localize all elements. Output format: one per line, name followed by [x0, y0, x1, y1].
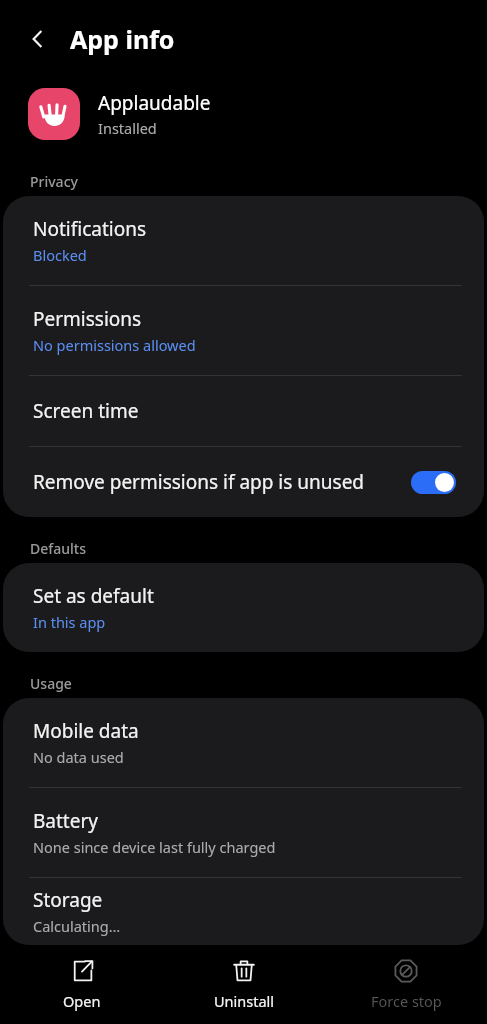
staticText: Mobile data: [33, 718, 139, 744]
button[interactable]: Storage: [3, 878, 484, 945]
staticText: Uninstall: [214, 991, 275, 1011]
button[interactable]: Screen time: [3, 376, 484, 446]
staticText: Remove permissions if app is unused: [33, 469, 411, 495]
staticText: Installed: [98, 118, 157, 138]
button[interactable]: Uninstall: [163, 945, 325, 1024]
button[interactable]: Applaudable: [0, 78, 487, 150]
button[interactable]: Mobile data: [3, 698, 484, 787]
staticText: No permissions allowed: [33, 335, 196, 355]
staticText: Battery: [33, 808, 98, 834]
staticText: App info: [70, 22, 175, 56]
button[interactable]: Set as default: [3, 563, 484, 652]
staticText: Applaudable: [98, 90, 211, 116]
staticText: In this app: [33, 612, 106, 632]
button[interactable]: Permissions: [3, 286, 484, 375]
staticText: Screen time: [33, 398, 139, 424]
button[interactable]: Battery: [3, 788, 484, 877]
staticText: Blocked: [33, 245, 87, 265]
staticText: Privacy: [30, 172, 78, 191]
staticText: Force stop: [371, 991, 442, 1011]
staticText: Permissions: [33, 306, 142, 332]
button[interactable]: Open: [0, 945, 163, 1024]
staticText: None since device last fully charged: [33, 837, 276, 857]
staticText: Usage: [30, 674, 72, 693]
button[interactable]: Back: [14, 15, 62, 63]
staticText: Set as default: [33, 583, 154, 609]
button[interactable]: Force stop: [325, 945, 487, 1024]
button[interactable]: Notifications: [3, 196, 484, 285]
staticText: Defaults: [30, 539, 86, 558]
staticText: Calculating…: [33, 916, 121, 936]
staticText: Storage: [33, 887, 103, 913]
button[interactable]: Remove permissions if app is unused: [3, 447, 484, 517]
staticText: No data used: [33, 747, 124, 767]
staticText: Notifications: [33, 216, 147, 242]
staticText: Open: [63, 991, 101, 1011]
